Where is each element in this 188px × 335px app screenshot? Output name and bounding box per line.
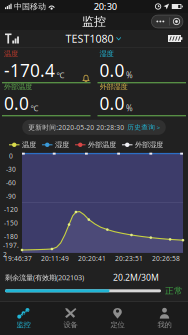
staticText: > (157, 123, 160, 131)
staticText: ℃ (30, 103, 38, 114)
button[interactable]: 更新时间:2020-05-20 20:28:30 (22, 120, 166, 135)
staticText: 剩余流量(有效期(202103) (5, 272, 84, 282)
staticText: 0.0 (4, 91, 29, 115)
button[interactable]: 外部温度 (75, 140, 116, 149)
staticText: TEST1080 (65, 31, 113, 46)
staticText: 温度 (22, 140, 36, 149)
staticText: 外部湿度 (135, 140, 163, 149)
button[interactable]: More (151, 15, 169, 28)
staticText: 正常 (165, 285, 183, 296)
staticText: 20.2M/30M (113, 272, 159, 283)
staticText: % (126, 70, 133, 81)
staticText: -60 (6, 178, 16, 187)
button[interactable]: 外部湿度 (122, 140, 163, 149)
staticText: 我的 (157, 320, 171, 329)
staticText: -90 (6, 191, 16, 201)
button[interactable]: 监控 (0, 302, 47, 334)
staticText: -170.4 (4, 58, 55, 82)
staticText: 外部温度 (4, 82, 32, 91)
button[interactable]: Alarm (82, 74, 89, 82)
staticText: % (126, 103, 133, 114)
button[interactable]: 我的 (141, 302, 188, 334)
staticText: 监控 (82, 14, 106, 29)
staticText: 0.0 (99, 58, 124, 82)
staticText: 设备 (63, 320, 77, 329)
staticText: 定位 (110, 320, 124, 329)
button[interactable]: 湿度 (42, 140, 69, 149)
staticText: 温度 (4, 49, 18, 58)
staticText: 0 (9, 151, 13, 160)
staticText: 监控 (16, 320, 30, 329)
staticText: -120 (4, 205, 18, 214)
staticText: -30 (6, 165, 16, 174)
staticText: 20:20:41 (78, 254, 106, 263)
button[interactable]: Close (170, 15, 183, 28)
staticText: 湿度 (99, 49, 113, 58)
staticText: 19:46:37 (4, 254, 32, 263)
staticText: 外部温度 (88, 140, 116, 149)
staticText: 湿度 (55, 140, 69, 149)
staticText: 20:23:51 (115, 254, 143, 263)
staticText: -150 (4, 218, 18, 227)
staticText: 中国移动 (12, 1, 48, 12)
button[interactable]: 定位 (94, 302, 141, 334)
staticText: 外部湿度 (99, 82, 127, 91)
staticText: 20:30 (94, 0, 117, 13)
staticText: 20:26:58 (152, 254, 180, 263)
staticText: -197.2 (3, 241, 19, 259)
staticText: ℃ (56, 70, 64, 81)
staticText: 历史查询 (127, 123, 155, 131)
staticText: -180 (4, 232, 18, 241)
button[interactable]: 温度 (9, 140, 36, 149)
button[interactable]: TEST1080 (65, 31, 121, 46)
staticText: 更新时间:2020-05-20 20:28:30 (28, 123, 124, 132)
staticText: 20:11:49 (41, 254, 69, 263)
button[interactable]: 设备 (47, 302, 94, 334)
staticText: 0.0 (99, 91, 124, 115)
